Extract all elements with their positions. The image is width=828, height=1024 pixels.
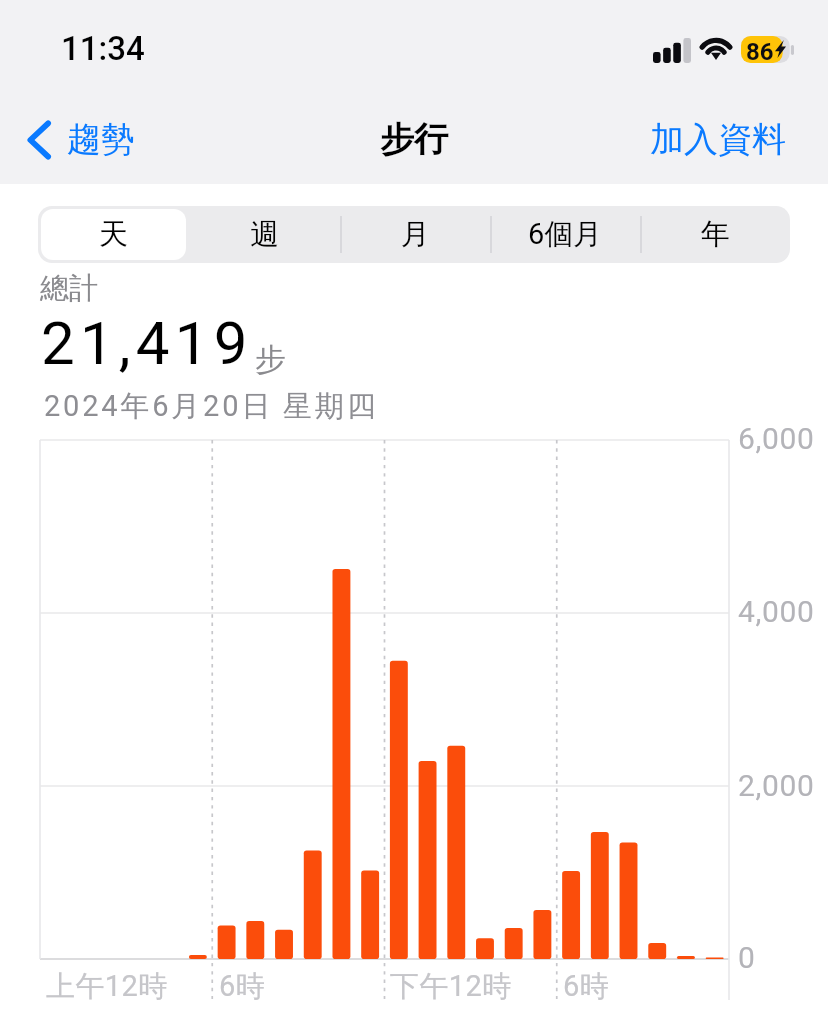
staticText: 86 [746, 38, 774, 65]
staticText: 21,419 [41, 308, 253, 378]
staticText: 2,000 [738, 768, 815, 803]
staticText: 2024年6月20日 星期四 [44, 388, 379, 425]
button[interactable]: 月 [340, 206, 490, 263]
button[interactable]: 週 [189, 206, 340, 263]
staticText: 6個月 [528, 216, 603, 253]
staticText: 6,000 [738, 421, 815, 456]
button[interactable]: 6個月 [490, 206, 640, 263]
staticText: 趨勢 [67, 118, 135, 161]
staticText: 0 [738, 940, 756, 975]
button[interactable]: Back [17, 112, 145, 167]
button[interactable]: 年 [640, 206, 790, 263]
staticText: 步行 [380, 118, 448, 161]
staticText: 11:34 [61, 29, 145, 68]
staticText: 4,000 [738, 594, 815, 629]
staticText: 天 [99, 216, 128, 253]
staticText: 加入資料 [650, 118, 786, 161]
staticText: 總計 [40, 270, 98, 307]
staticText: 6時 [563, 968, 610, 1005]
other: Back [27, 121, 51, 159]
button[interactable]: 加入資料 [642, 112, 794, 167]
staticText: 6時 [219, 968, 266, 1005]
button[interactable]: Step count chart for 20 June 2024 [0, 430, 828, 1024]
staticText: 月 [401, 216, 430, 253]
staticText: 週 [250, 216, 279, 253]
staticText: 下午12時 [390, 968, 512, 1005]
staticText: 上午12時 [46, 968, 168, 1005]
button[interactable]: 天 [38, 206, 189, 263]
staticText: 年 [701, 216, 730, 253]
staticText: 步 [255, 340, 286, 379]
